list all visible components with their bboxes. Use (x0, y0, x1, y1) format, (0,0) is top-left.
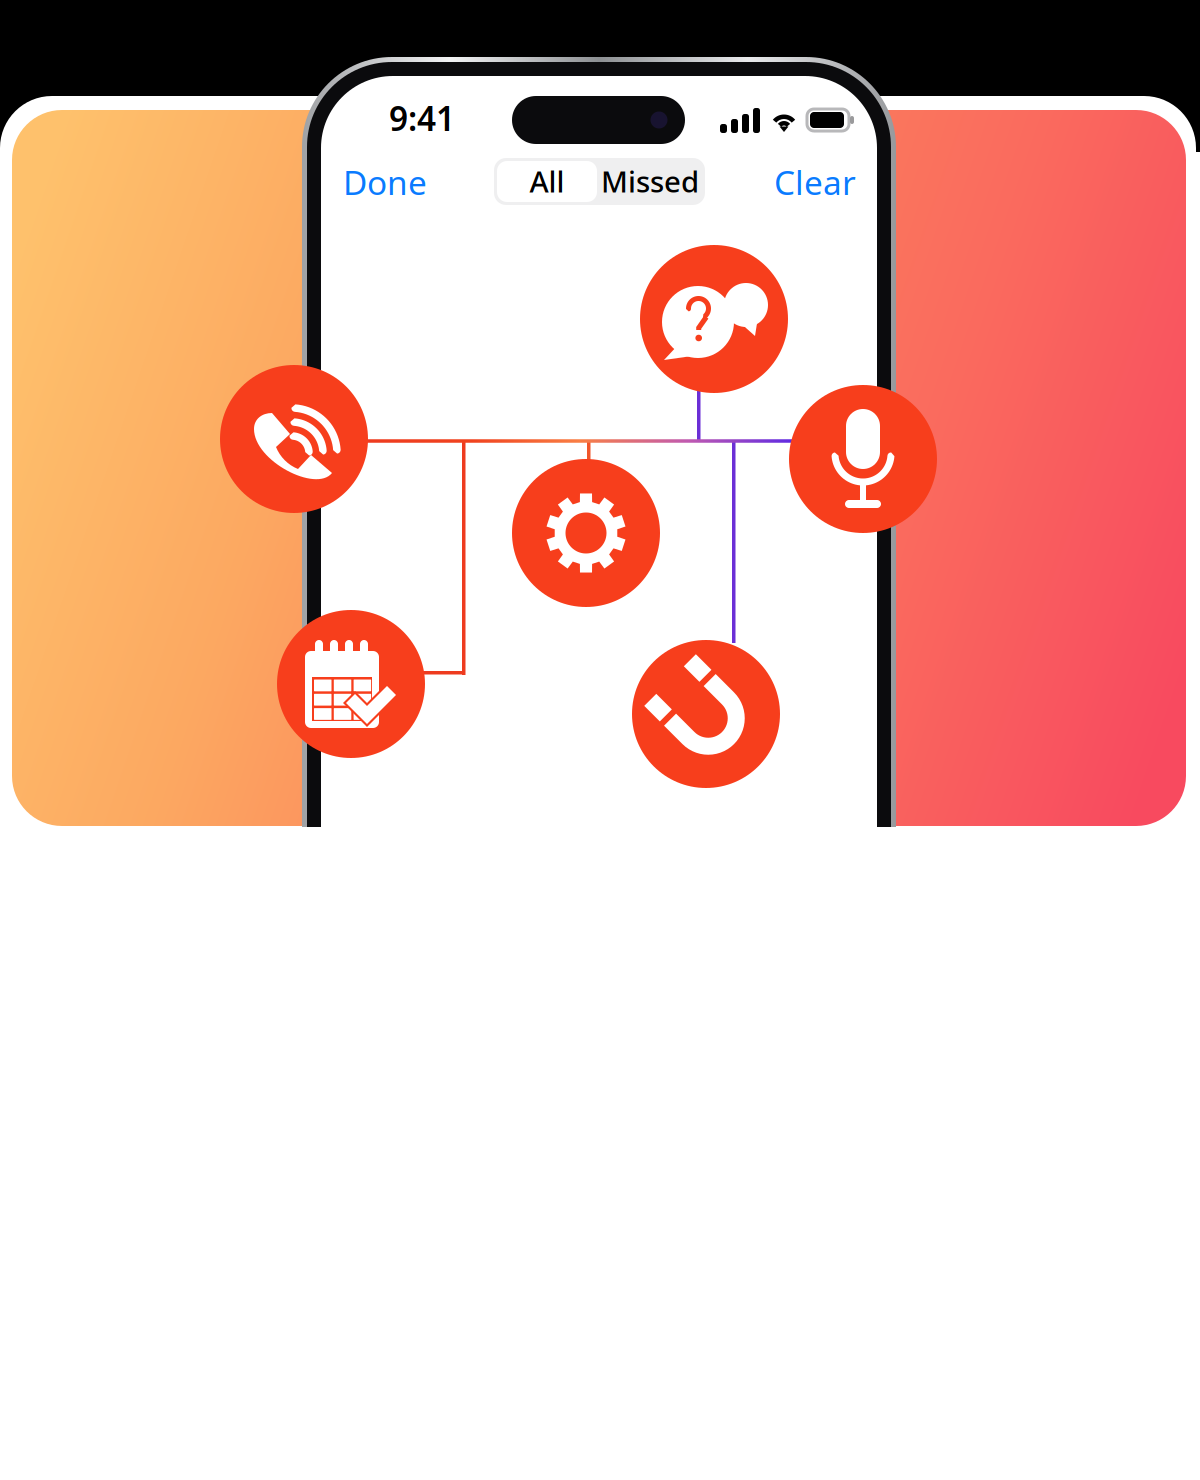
button[interactable]: Done (343, 154, 461, 210)
staticText: Done (343, 160, 427, 204)
staticText: Clear (774, 160, 856, 204)
button[interactable]: Schedule (277, 610, 425, 758)
button[interactable]: Settings (512, 459, 660, 607)
button[interactable]: Attract (632, 640, 780, 788)
staticText: Missed (601, 161, 699, 200)
staticText: All (529, 161, 564, 200)
button[interactable]: Voice (789, 385, 937, 533)
button[interactable]: Call (220, 365, 368, 513)
button[interactable]: Chat support (640, 245, 788, 393)
button[interactable]: Clear (738, 154, 856, 210)
staticText: 9:41 (389, 96, 455, 140)
button[interactable]: All (497, 160, 597, 201)
button[interactable]: Missed (597, 160, 703, 201)
